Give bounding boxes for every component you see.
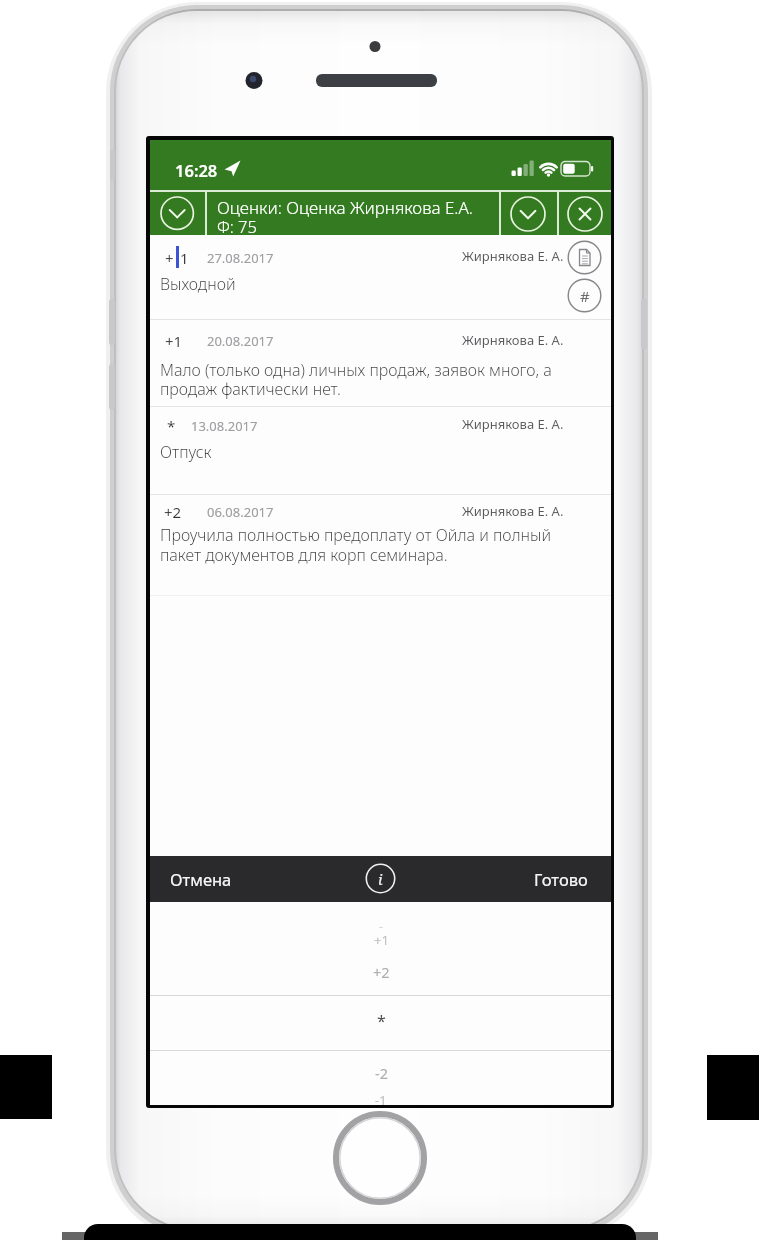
staticText: Готово xyxy=(534,868,588,890)
staticText: +2 xyxy=(373,962,390,982)
staticText: 20.08.2017 xyxy=(207,332,274,350)
staticText: продаж фактически нет. xyxy=(160,378,341,400)
staticText: +2 xyxy=(164,502,182,522)
staticText: * xyxy=(377,1010,386,1032)
button[interactable]: # xyxy=(567,278,602,313)
button[interactable]: Готово xyxy=(497,859,588,898)
staticText: Жирнякова Е. А. xyxy=(462,247,564,265)
staticText: Отпуск xyxy=(160,441,212,463)
staticText: Жирнякова Е. А. xyxy=(462,415,564,433)
button[interactable] xyxy=(330,1108,430,1208)
staticText: 16:28 xyxy=(175,159,218,181)
staticText: Ф: 75 xyxy=(217,215,257,237)
staticText: пакет документов для корп семинара. xyxy=(160,544,448,566)
staticText: + xyxy=(165,248,174,268)
staticText: Мало (только одна) личных продаж, заявок… xyxy=(160,359,552,381)
staticText: Проучила полностью предоплату от Ойла и … xyxy=(160,524,551,546)
staticText: 06.08.2017 xyxy=(207,503,274,521)
staticText: 27.08.2017 xyxy=(207,249,274,267)
button[interactable] xyxy=(565,194,605,234)
staticText: 1 xyxy=(180,248,189,268)
staticText: Отмена xyxy=(170,868,232,890)
staticText: -2 xyxy=(375,1063,388,1083)
staticText: Жирнякова Е. А. xyxy=(462,502,564,520)
staticText: +1 xyxy=(374,931,389,949)
staticText: -1 xyxy=(375,1091,387,1105)
button[interactable] xyxy=(158,194,196,232)
staticText: Оценки: Оценка Жирнякова Е.А. xyxy=(217,196,473,219)
staticText: * xyxy=(167,416,176,436)
button[interactable]: i xyxy=(363,861,398,896)
staticText: Жирнякова Е. А. xyxy=(462,331,564,349)
staticText: Выходной xyxy=(160,273,236,295)
staticText: # xyxy=(580,286,590,306)
staticText: +1 xyxy=(165,331,183,351)
staticText: - xyxy=(379,918,383,934)
button[interactable]: Отмена xyxy=(162,859,252,898)
button[interactable] xyxy=(567,240,602,275)
staticText: 13.08.2017 xyxy=(191,417,258,435)
staticText: i xyxy=(378,869,383,889)
button[interactable] xyxy=(508,194,548,234)
